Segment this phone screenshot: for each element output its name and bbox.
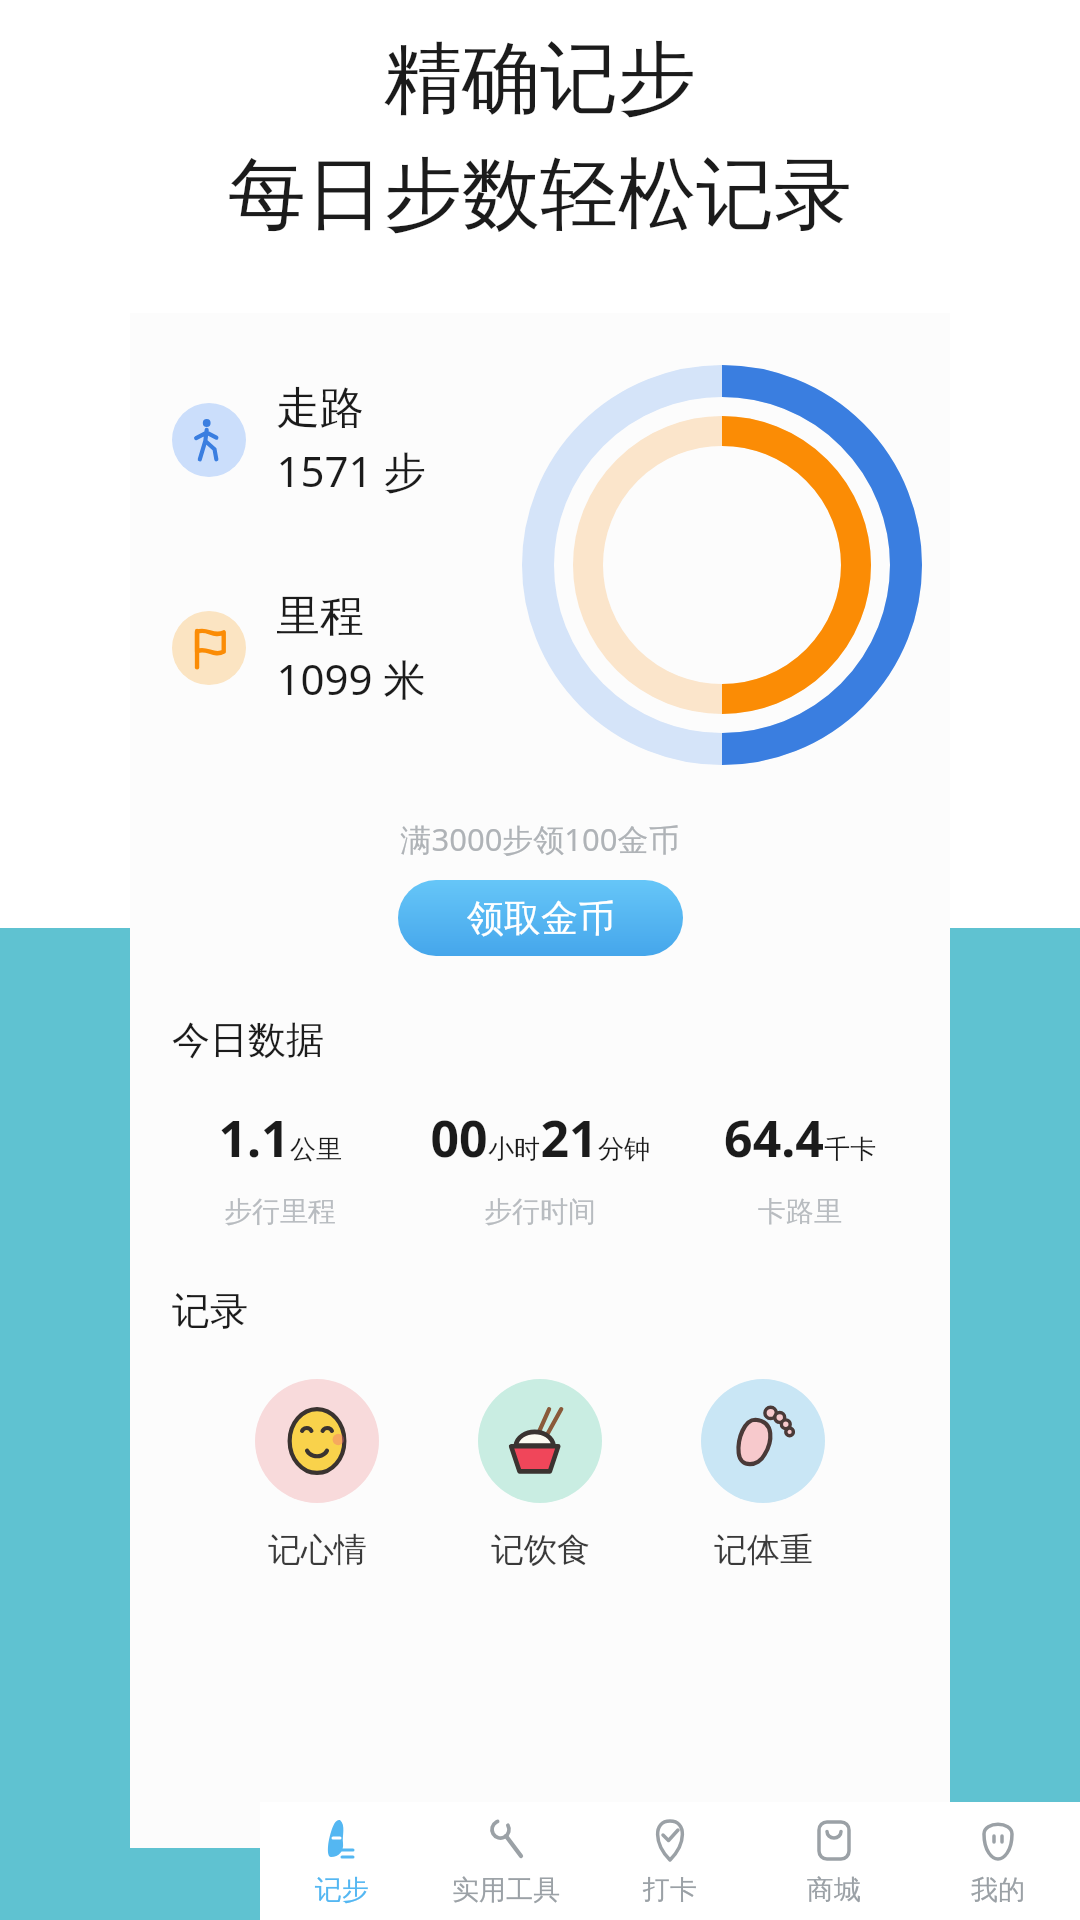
staticText: 21	[540, 1104, 598, 1172]
staticText: 步行里程	[224, 1194, 336, 1229]
button[interactable]: 64.4	[670, 1104, 930, 1229]
button[interactable]: 走路	[172, 381, 426, 499]
staticText: 今日数据	[172, 1016, 324, 1064]
button[interactable]: 记心情	[255, 1379, 379, 1571]
staticText: 记饮食	[491, 1529, 590, 1571]
staticText: 1.1	[218, 1104, 290, 1172]
staticText: 精确记步	[384, 30, 696, 128]
staticText: 每日步数轻松记录	[228, 146, 852, 244]
staticText: 记体重	[714, 1529, 813, 1571]
button[interactable]: 1.1	[150, 1104, 410, 1229]
staticText: 满3000步领100金币	[400, 818, 680, 860]
staticText: 小时	[488, 1133, 540, 1166]
staticText: 领取金币	[467, 895, 615, 942]
staticText: 公里	[290, 1133, 342, 1166]
staticText: 走路	[276, 381, 364, 436]
button[interactable]: 我的	[916, 1802, 1080, 1920]
staticText: 1099 米	[276, 650, 426, 707]
button[interactable]: 里程	[172, 589, 426, 707]
button[interactable]: 领取金币	[398, 880, 683, 956]
staticText: 打卡	[643, 1873, 697, 1907]
staticText: 我的	[971, 1873, 1025, 1907]
staticText: 步行时间	[484, 1194, 596, 1229]
staticText: 实用工具	[452, 1873, 560, 1907]
button[interactable]: 记体重	[701, 1379, 825, 1571]
button[interactable]: 打卡	[588, 1802, 752, 1920]
button[interactable]: 00	[410, 1104, 670, 1229]
button[interactable]: 实用工具	[424, 1802, 588, 1920]
staticText: 商城	[807, 1873, 861, 1907]
staticText: 1571 步	[276, 442, 426, 499]
staticText: 00	[430, 1104, 488, 1172]
staticText: 64.4	[724, 1104, 824, 1172]
staticText: 卡路里	[758, 1194, 842, 1229]
staticText: 记步	[315, 1873, 369, 1907]
staticText: 千卡	[824, 1133, 876, 1166]
staticText: 记录	[172, 1287, 248, 1335]
staticText: 里程	[276, 589, 364, 644]
button[interactable]: 记饮食	[478, 1379, 602, 1571]
button[interactable]: 商城	[752, 1802, 916, 1920]
staticText: 分钟	[598, 1133, 650, 1166]
button[interactable]: 记步	[260, 1802, 424, 1920]
staticText: 记心情	[268, 1529, 367, 1571]
